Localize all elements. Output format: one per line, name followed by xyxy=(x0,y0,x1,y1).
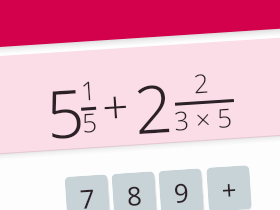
staticText: 5 xyxy=(43,66,87,158)
staticText: 5 xyxy=(81,104,98,140)
staticText: 2 xyxy=(193,65,210,100)
staticText: + xyxy=(100,74,131,138)
staticText: + xyxy=(220,171,238,207)
staticText: 3 × 5 xyxy=(173,99,234,138)
staticText: 2 xyxy=(131,61,175,153)
button[interactable]: 9 xyxy=(158,168,204,210)
staticText: 8 xyxy=(126,177,143,210)
staticText: 1 xyxy=(80,72,97,108)
staticText: 7 xyxy=(79,180,96,210)
button[interactable]: + xyxy=(206,165,252,210)
button[interactable]: 7 xyxy=(64,174,110,210)
staticText: 9 xyxy=(173,174,190,210)
button[interactable]: 8 xyxy=(111,171,157,210)
